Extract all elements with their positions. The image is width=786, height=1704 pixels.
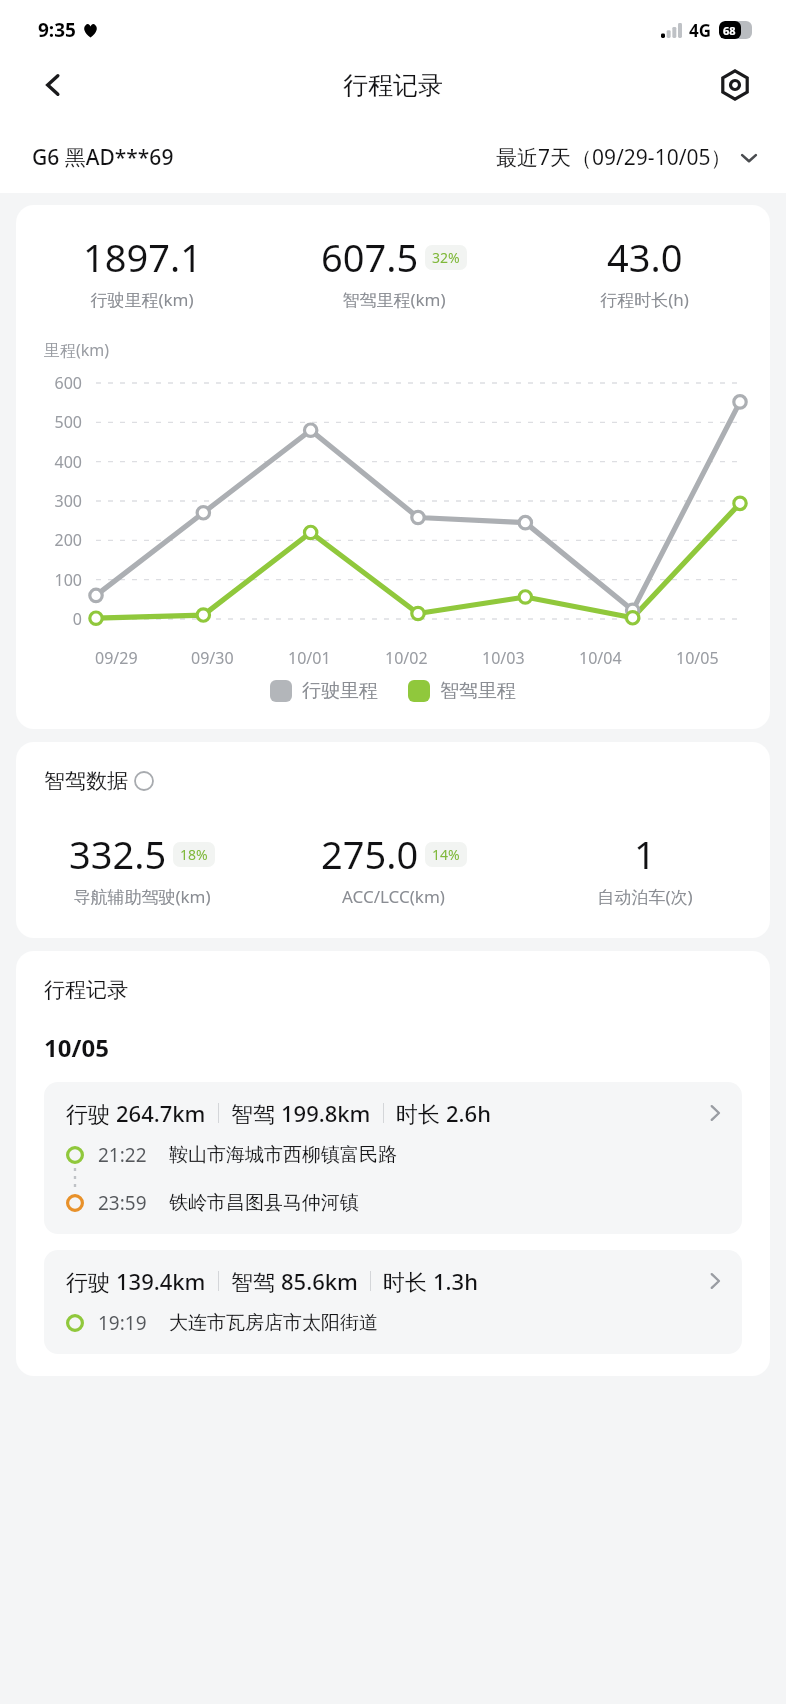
staticText: 200 <box>38 529 82 551</box>
staticText: 行程记录 <box>343 70 443 101</box>
staticText: 300 <box>38 490 82 512</box>
staticText: 最近7天（09/29-10/05） <box>496 143 732 172</box>
staticText: 智驾里程(km) <box>342 288 446 311</box>
button[interactable]: 智驾数据 <box>44 768 156 794</box>
staticText: 行驶 <box>66 1098 116 1128</box>
staticText: 0 <box>38 608 82 630</box>
staticText: 1897.1 <box>83 231 202 283</box>
staticText: 21:22 <box>98 1142 147 1168</box>
staticText: 10/03 <box>482 647 525 669</box>
staticText: 500 <box>38 411 82 433</box>
button[interactable]: Back <box>30 62 76 108</box>
staticText: 导航辅助驾驶(km) <box>73 885 211 908</box>
staticText: 行程时长(h) <box>600 288 689 311</box>
other: Help <box>134 771 154 791</box>
staticText: 68 <box>723 23 736 38</box>
button[interactable]: G6 黑AD***69 <box>30 137 176 178</box>
staticText: 100 <box>38 569 82 591</box>
button[interactable]: 332.5 <box>16 828 268 908</box>
button[interactable]: 275.0 <box>268 828 519 908</box>
staticText: 23:59 <box>98 1190 147 1216</box>
staticText: 139.4km <box>116 1266 206 1296</box>
button[interactable]: 最近7天（09/29-10/05） <box>494 137 760 178</box>
staticText: 智驾 <box>231 1098 281 1128</box>
staticText: 行程记录 <box>44 977 128 1003</box>
staticText: 400 <box>38 451 82 473</box>
staticText: 智驾里程 <box>440 679 516 703</box>
staticText: 09/29 <box>95 647 138 669</box>
staticText: 行驶里程 <box>302 679 378 703</box>
staticText: 10/01 <box>288 647 331 669</box>
staticText: 大连市瓦房店市太阳街道 <box>169 1311 378 1335</box>
staticText: 10/05 <box>676 647 719 669</box>
staticText: 14% <box>432 845 460 864</box>
staticText: 行驶 <box>66 1266 116 1296</box>
staticText: 10/05 <box>44 1031 109 1064</box>
staticText: 自动泊车(次) <box>597 885 693 908</box>
staticText: 09/30 <box>191 647 234 669</box>
staticText: ACC/LCC(km) <box>342 885 445 908</box>
staticText: 9:35 <box>38 17 76 43</box>
staticText: 智驾 <box>231 1266 281 1296</box>
button[interactable]: 1897.1 <box>16 231 268 311</box>
staticText: 2.6h <box>446 1098 491 1128</box>
staticText: 600 <box>38 372 82 394</box>
staticText: G6 黑AD***69 <box>32 143 174 172</box>
staticText: 85.6km <box>281 1266 358 1296</box>
staticText: 43.0 <box>607 231 683 283</box>
staticText: 275.0 <box>321 828 419 880</box>
button[interactable]: 行驶 <box>44 1082 742 1234</box>
staticText: 332.5 <box>69 828 167 880</box>
staticText: 18% <box>180 845 208 864</box>
staticText: 607.5 <box>321 231 419 283</box>
staticText: 行驶里程(km) <box>90 288 194 311</box>
other: Open trip detail <box>706 1104 724 1122</box>
staticText: 32% <box>432 248 460 267</box>
staticText: 4G <box>689 19 712 42</box>
button[interactable]: 1 <box>519 828 770 908</box>
staticText: 里程(km) <box>44 339 110 361</box>
staticText: 时长 <box>383 1266 433 1296</box>
staticText: 智驾数据 <box>44 768 128 794</box>
staticText: 铁岭市昌图县马仲河镇 <box>169 1191 359 1215</box>
other: Open trip detail <box>706 1272 724 1290</box>
button[interactable]: 43.0 <box>519 231 770 311</box>
staticText: 10/04 <box>579 647 622 669</box>
button[interactable]: 607.5 <box>268 231 519 311</box>
staticText: 19:19 <box>98 1310 147 1336</box>
staticText: 10/02 <box>385 647 428 669</box>
staticText: 264.7km <box>116 1098 206 1128</box>
button[interactable]: Settings <box>712 62 758 108</box>
staticText: 199.8km <box>281 1098 371 1128</box>
button[interactable]: 行驶 <box>44 1250 742 1354</box>
staticText: 时长 <box>396 1098 446 1128</box>
staticText: 1 <box>634 828 656 880</box>
staticText: 1.3h <box>433 1266 478 1296</box>
staticText: 鞍山市海城市西柳镇富民路 <box>169 1143 397 1167</box>
